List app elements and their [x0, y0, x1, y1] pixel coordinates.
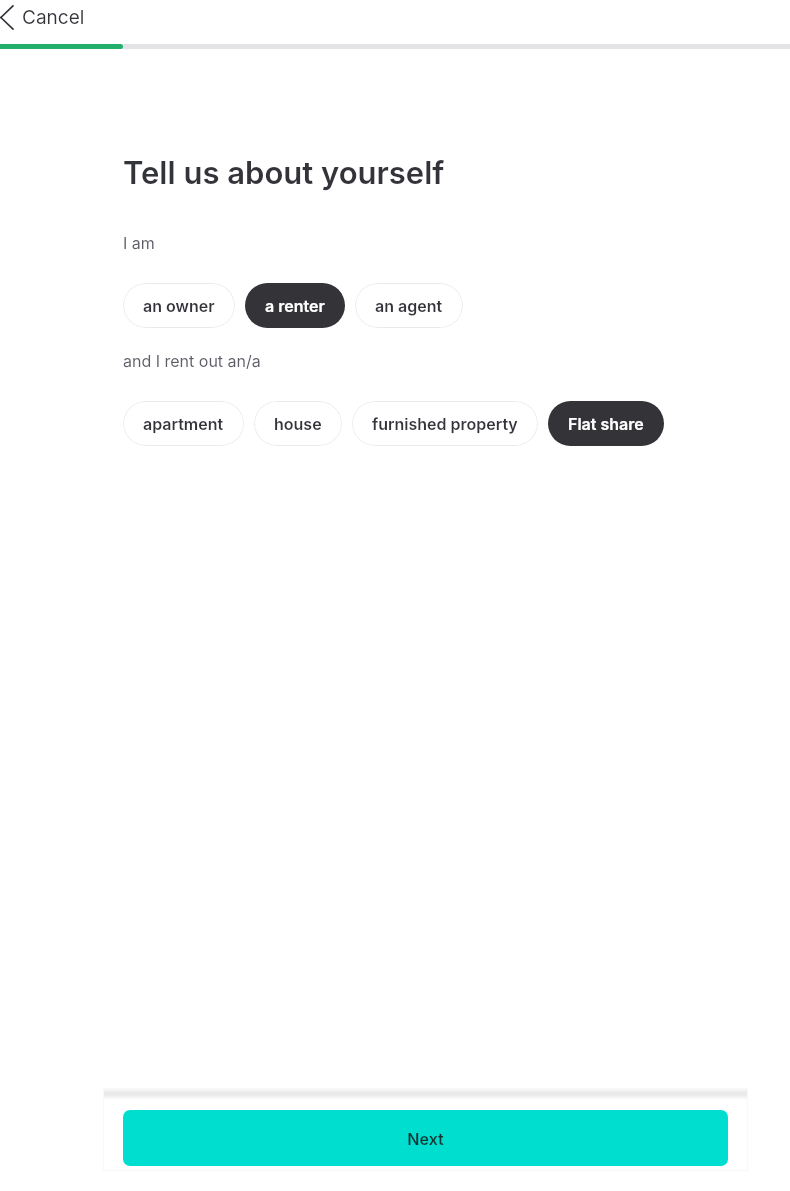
staticText: apartment [143, 414, 224, 433]
staticText: furnished property [372, 414, 518, 433]
button[interactable]: house [254, 401, 342, 446]
button[interactable]: a renter [245, 283, 345, 328]
button[interactable]: apartment [123, 401, 244, 446]
staticText: and I rent out an/a [123, 351, 261, 370]
button[interactable]: furnished property [352, 401, 538, 446]
button[interactable]: Cancel and go back [0, 2, 99, 33]
staticText: Cancel [22, 6, 85, 29]
button[interactable]: Flat share [548, 401, 664, 446]
staticText: a renter [265, 296, 325, 315]
staticText: Next [407, 1129, 444, 1148]
button[interactable]: Next [123, 1110, 728, 1166]
staticText: Flat share [568, 414, 644, 433]
button[interactable]: an owner [123, 283, 235, 328]
staticText: an agent [375, 296, 443, 315]
button[interactable]: an agent [355, 283, 463, 328]
staticText: Tell us about yourself [123, 154, 445, 192]
staticText: an owner [143, 296, 215, 315]
staticText: I am [123, 233, 155, 252]
staticText: house [274, 414, 322, 433]
